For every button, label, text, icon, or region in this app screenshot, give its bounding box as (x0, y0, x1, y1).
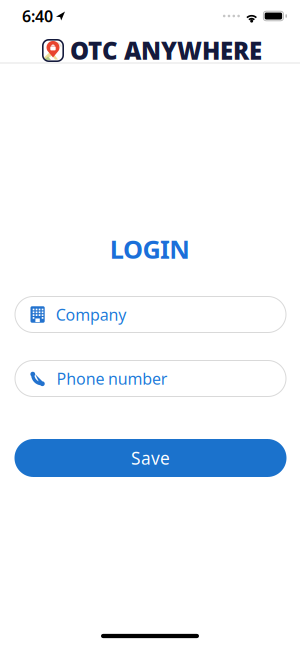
staticText: LOGIN (110, 232, 190, 266)
staticText: OTC ANYWHERE (70, 35, 262, 66)
button[interactable]: Phone number (14, 360, 286, 397)
staticText: Save (131, 446, 170, 469)
staticText: Phone number (56, 368, 168, 389)
button[interactable]: Company (14, 296, 286, 333)
staticText: Company (56, 304, 126, 325)
staticText: 6:40 (22, 5, 53, 27)
button[interactable]: Save (14, 439, 286, 477)
